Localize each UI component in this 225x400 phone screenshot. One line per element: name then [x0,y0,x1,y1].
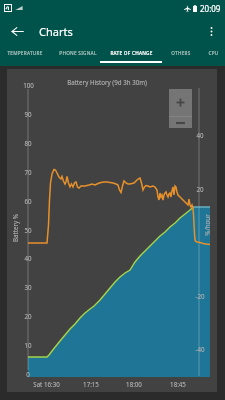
staticText: 10 [24,341,32,349]
staticText: 40 [196,131,204,139]
staticText: 100 [23,81,34,89]
staticText: Battery % [11,214,19,242]
staticText: 20 [196,185,204,193]
staticText: 40 [24,254,32,262]
staticText: 70 [24,168,32,176]
staticText: 80 [24,139,32,147]
staticText: 90 [24,110,32,118]
staticText: 60 [24,197,32,205]
button[interactable]: PHONE SIGNAL [54,46,102,66]
staticText: CPU [208,50,219,56]
staticText: OTHERS [171,50,191,56]
staticText: 50 [24,226,32,234]
button[interactable]: More options [197,17,225,45]
staticText: 0 [26,370,30,378]
staticText: %/hour [203,214,211,236]
staticText: 30 [24,283,32,291]
staticText: Sat 16:30 [33,380,60,388]
staticText: 20:09 [200,3,221,14]
staticText: 17:15 [83,380,99,388]
button[interactable]: RATE OF CHANGE [100,46,162,66]
staticText: -40 [195,345,205,353]
staticText: Battery History (9d 3h 30m) [67,78,147,86]
button[interactable]: TEMPERATURE [0,46,50,66]
staticText: 18:45 [170,380,186,388]
button[interactable]: Back [3,17,31,45]
staticText: Charts [39,24,73,39]
staticText: -20 [195,292,205,300]
staticText: 18:00 [126,380,142,388]
staticText: PHONE SIGNAL [59,50,97,56]
button[interactable]: CPU [200,46,225,66]
staticText: 20 [24,312,32,320]
staticText: RATE OF CHANGE [110,50,153,56]
staticText: TEMPERATURE [7,50,43,56]
button[interactable]: Zoom out [169,117,192,128]
button[interactable]: Zoom in [169,89,192,116]
button[interactable]: OTHERS [162,46,200,66]
